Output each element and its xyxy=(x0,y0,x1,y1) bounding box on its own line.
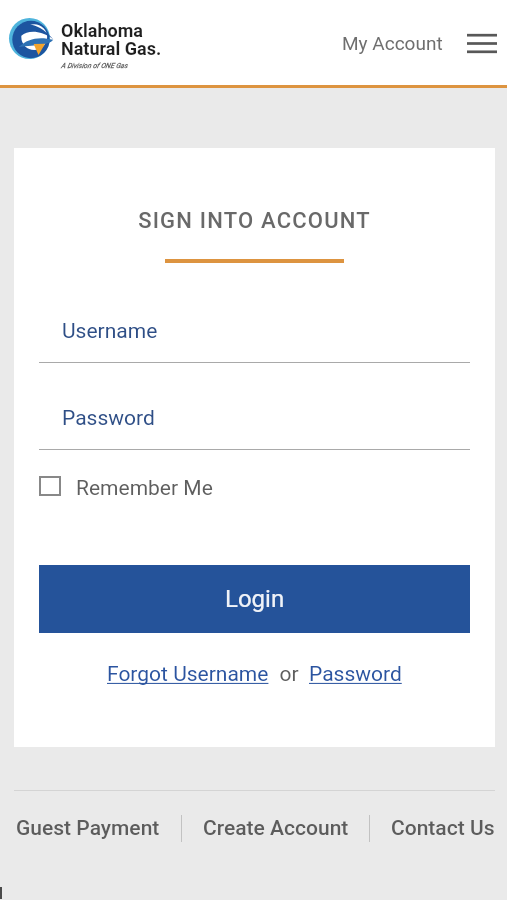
staticText: Forgot Username xyxy=(107,662,269,687)
button[interactable]: Open navigation menu xyxy=(460,21,504,65)
button[interactable]: My Account xyxy=(337,26,448,60)
staticText: SIGN INTO ACCOUNT xyxy=(14,208,495,234)
staticText: or xyxy=(269,662,309,687)
button[interactable]: Guest Payment xyxy=(16,808,160,849)
staticText: Contact Us xyxy=(391,816,495,841)
button[interactable]: Username xyxy=(39,319,470,344)
button[interactable]: Password xyxy=(309,662,402,687)
staticText: Password xyxy=(309,662,402,687)
staticText: Remember Me xyxy=(76,476,213,501)
button[interactable]: Login xyxy=(39,565,470,633)
staticText: Natural Gas. xyxy=(61,38,162,59)
staticText: Oklahoma xyxy=(61,20,143,41)
staticText: Password xyxy=(62,406,155,431)
staticText: Guest Payment xyxy=(16,816,160,841)
button[interactable]: Contact Us xyxy=(391,808,495,849)
staticText: Create Account xyxy=(203,816,349,841)
staticText: Username xyxy=(62,319,158,344)
button[interactable]: Forgot Username xyxy=(107,662,269,687)
staticText: My Account xyxy=(342,32,443,54)
staticText: A Division of ONE Gas xyxy=(61,62,128,70)
button[interactable]: Password xyxy=(39,406,470,431)
button[interactable]: Create Account xyxy=(203,808,349,849)
staticText: Login xyxy=(225,585,285,613)
button[interactable]: Remember Me xyxy=(39,473,213,498)
